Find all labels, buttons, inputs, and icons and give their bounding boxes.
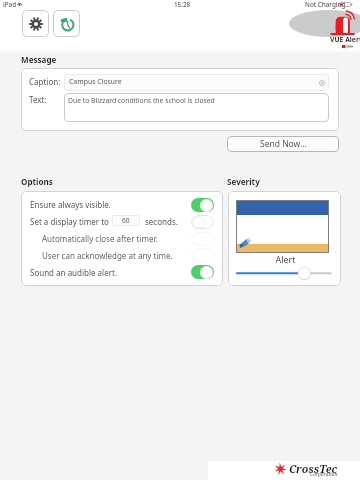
staticText: CrossTec [289,462,337,476]
staticText: Text: [29,94,47,105]
staticText: Set a display timer to [30,216,109,227]
staticText: iPad [3,0,17,9]
staticText: Options [21,176,53,187]
button[interactable]: Due to Blizzard conditions the school is… [64,93,329,122]
staticText: Severity [227,176,260,187]
staticText: Corporation [310,471,338,478]
button[interactable]: Campus Closure [64,74,329,91]
staticText: 60 [122,216,130,225]
staticText: 15:28 [174,0,191,9]
staticText: Campus Closure [69,77,122,86]
staticText: Message [21,54,57,65]
button[interactable]: History [53,10,80,37]
staticText: seconds. [145,216,178,227]
staticText: Not Charging [305,0,346,9]
button[interactable]: Set a display timer [191,215,214,229]
button[interactable]: Send Now... [227,136,339,152]
staticText: VUE Alert [330,35,360,44]
button[interactable]: Ensure always visible [191,198,214,212]
staticText: Alert [229,253,341,265]
staticText: Due to Blizzard conditions the school is… [68,96,215,105]
staticText: User can acknowledge at any time. [42,250,173,261]
staticText: Sound an audible alert. [30,267,118,278]
staticText: Ensure always visible. [30,199,111,210]
button[interactable]: Sound an audible alert [191,265,214,279]
button[interactable]: Ensure always visible. [21,196,223,212]
staticText: Automatically close after timer. [42,233,158,244]
button[interactable]: 60 [112,215,140,226]
staticText: Caption: [29,76,61,87]
button[interactable]: Severity level [235,267,332,280]
button[interactable]: Settings [22,10,49,37]
staticText: Send Now... [260,138,307,150]
